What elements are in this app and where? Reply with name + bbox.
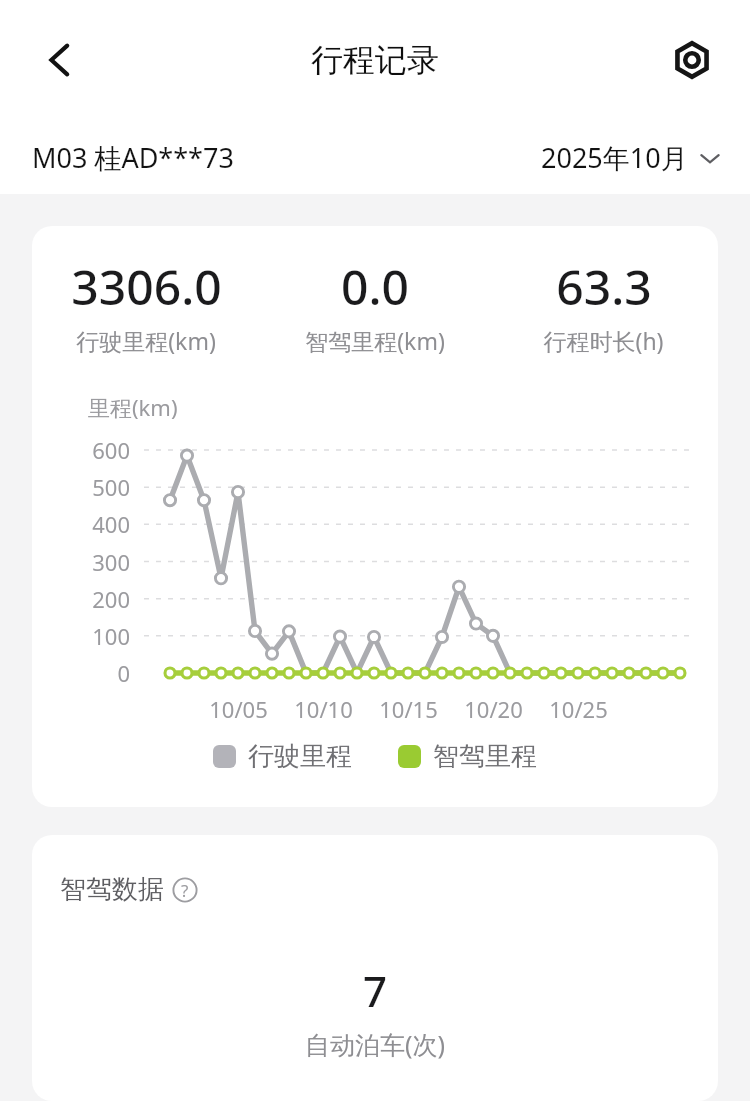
staticText: 里程(km)	[88, 392, 178, 422]
staticText: 100	[92, 621, 130, 651]
button[interactable]: Vehicle settings	[660, 28, 724, 92]
staticText: 0	[117, 658, 130, 688]
button[interactable]: 2025年10月	[537, 131, 726, 184]
staticText: 行驶里程(km)	[76, 325, 216, 356]
other: About smart-driving data	[172, 877, 198, 903]
staticText: 10/05	[209, 694, 268, 724]
staticText: 0.0	[341, 254, 409, 319]
staticText: 智驾数据	[60, 873, 164, 906]
staticText: 10/25	[549, 694, 608, 724]
button[interactable]: 智驾数据	[56, 869, 202, 910]
button[interactable]: Back	[28, 28, 92, 92]
staticText: 600	[92, 435, 130, 465]
staticText: 300	[92, 547, 130, 577]
staticText: 7	[363, 962, 388, 1019]
staticText: 63.3	[556, 254, 652, 319]
staticText: 智驾里程(km)	[305, 325, 445, 356]
staticText: 智驾里程	[433, 740, 537, 773]
staticText: 行程时长(h)	[543, 325, 664, 356]
staticText: 500	[92, 472, 130, 502]
staticText: 10/20	[464, 694, 523, 724]
button[interactable]: 智驾里程	[392, 734, 543, 779]
staticText: 10/10	[294, 694, 353, 724]
staticText: 200	[92, 584, 130, 614]
staticText: 400	[92, 509, 130, 539]
staticText: 行驶里程	[248, 740, 352, 773]
staticText: 行程记录	[311, 40, 439, 80]
staticText: ?	[181, 879, 189, 902]
staticText: 3306.0	[71, 254, 222, 319]
staticText: M03 桂AD***73	[32, 139, 234, 176]
staticText: 自动泊车(次)	[305, 1027, 446, 1061]
staticText: 10/15	[379, 694, 438, 724]
staticText: 2025年10月	[541, 139, 688, 176]
button[interactable]: 行驶里程	[207, 734, 358, 779]
